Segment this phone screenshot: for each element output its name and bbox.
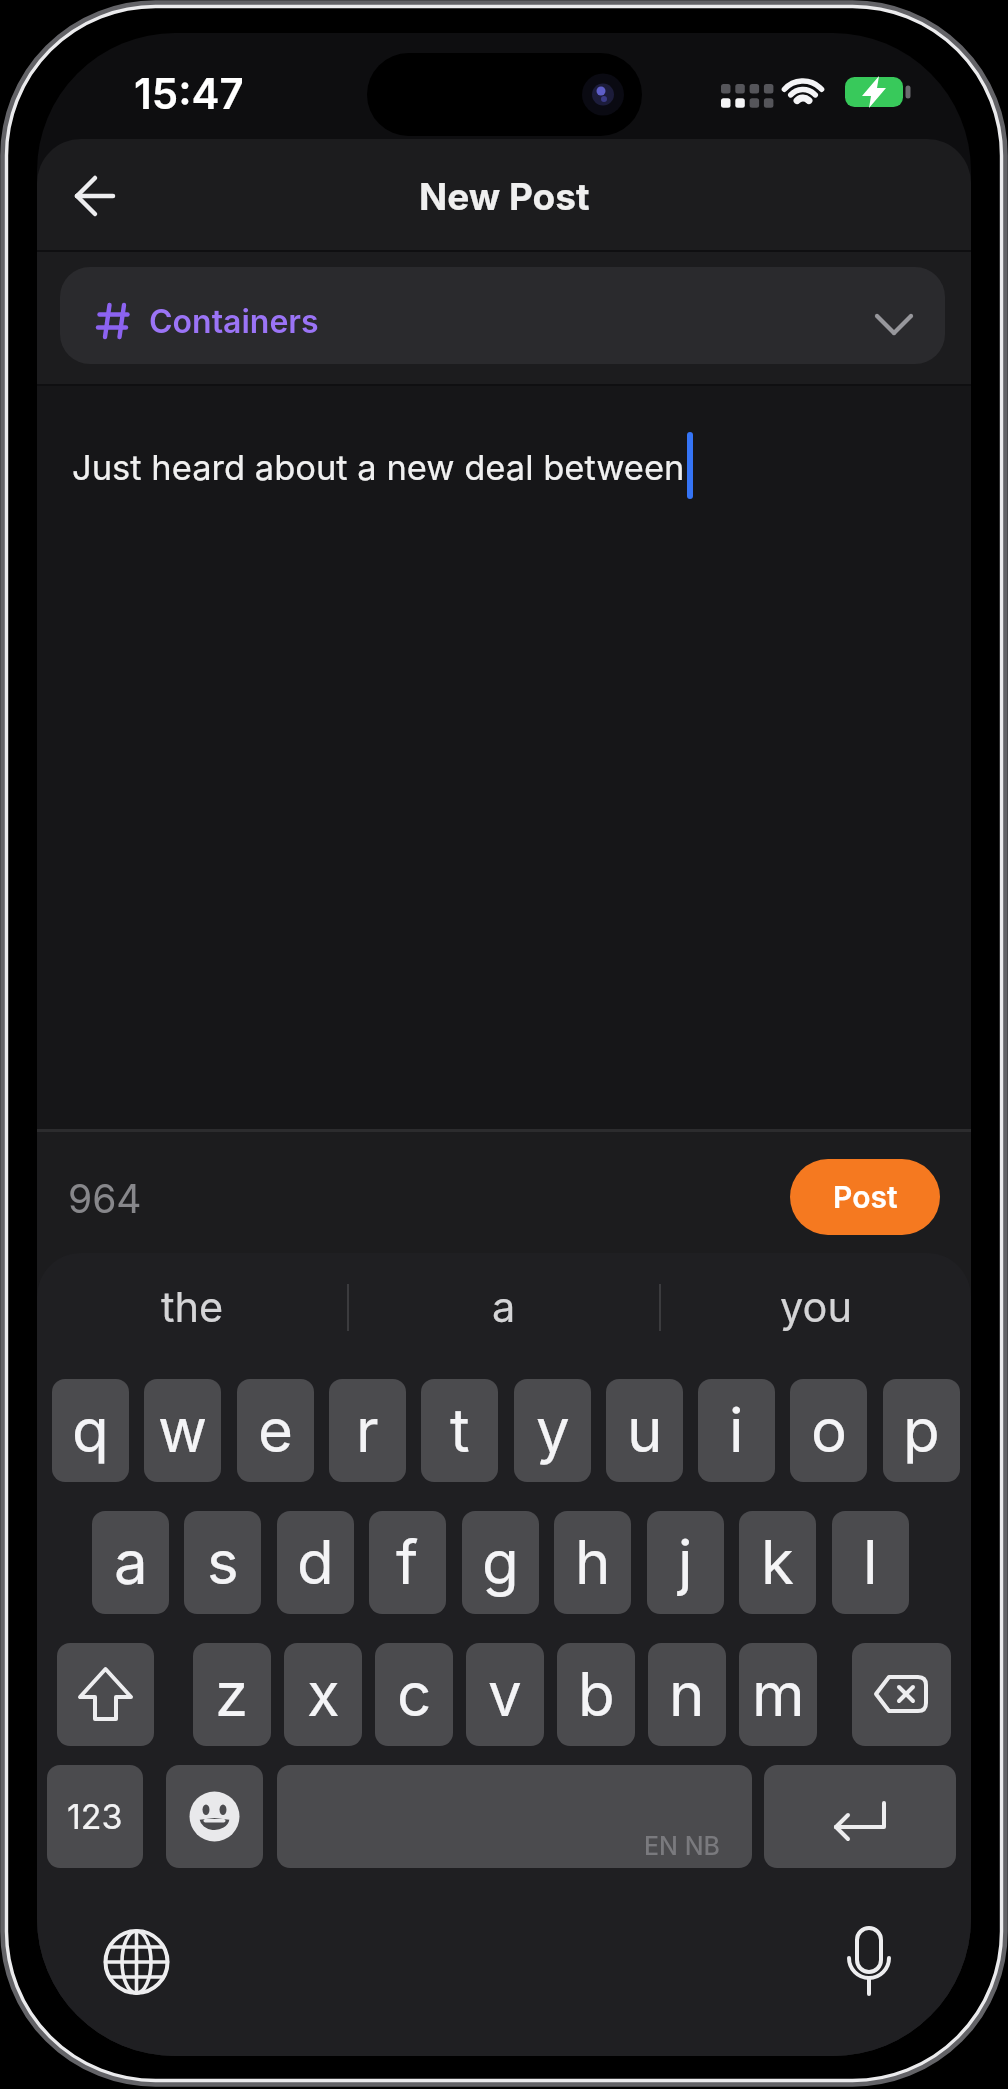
staticText: m [752,1658,805,1731]
staticText: a [492,1282,516,1332]
staticText: t [450,1394,470,1467]
staticText: b [578,1658,615,1731]
button[interactable]: h [554,1511,631,1614]
staticText: x [307,1658,340,1731]
button[interactable]: a [92,1511,169,1614]
button[interactable] [37,1271,348,1343]
staticText: c [397,1658,432,1731]
button[interactable]: p [883,1379,960,1482]
staticText: k [761,1526,794,1599]
staticText: Post [833,1179,898,1215]
staticText: 15:47 [134,68,244,119]
button[interactable]: s [184,1511,261,1614]
staticText: f [396,1526,419,1599]
staticText: s [207,1526,239,1599]
button[interactable]: m [739,1643,817,1746]
button[interactable]: e [237,1379,314,1482]
button[interactable] [790,1159,940,1235]
button[interactable]: f [369,1511,446,1614]
staticText: h [575,1526,611,1599]
staticText: New Post [419,174,590,219]
staticText: r [356,1394,379,1467]
button[interactable]: o [790,1379,867,1482]
staticText: i [729,1394,744,1467]
staticText: j [678,1526,693,1599]
button[interactable]: g [462,1511,539,1614]
staticText: 123 [67,1796,123,1837]
staticText: e [258,1394,293,1467]
button[interactable]: z [193,1643,271,1746]
button[interactable]: u [606,1379,683,1482]
button[interactable] [660,1271,971,1343]
button[interactable] [37,386,971,1129]
button[interactable] [852,1643,951,1746]
staticText: a [114,1526,148,1599]
staticText: v [488,1658,522,1731]
button[interactable]: n [648,1643,726,1746]
button[interactable]: c [375,1643,453,1746]
button[interactable] [166,1765,263,1868]
staticText: 964 [68,1175,142,1222]
button[interactable]: j [647,1511,724,1614]
button[interactable] [67,168,127,228]
button[interactable]: q [52,1379,129,1482]
staticText: Containers [149,302,319,341]
button[interactable]: w [144,1379,221,1482]
staticText: EN NB [644,1831,720,1861]
button[interactable] [47,1765,143,1868]
staticText: p [903,1394,940,1467]
staticText: u [627,1394,663,1467]
staticText: l [863,1526,878,1599]
button[interactable]: y [514,1379,591,1482]
staticText: o [811,1394,847,1467]
button[interactable]: x [284,1643,362,1746]
staticText: g [482,1526,519,1599]
button[interactable] [57,1643,154,1746]
staticText: z [215,1658,249,1731]
button[interactable] [37,1253,971,2056]
button[interactable]: i [698,1379,775,1482]
staticText: q [72,1394,109,1467]
button[interactable] [348,1271,660,1343]
button[interactable]: t [421,1379,498,1482]
button[interactable]: d [277,1511,354,1614]
button[interactable] [60,267,945,364]
button[interactable]: v [466,1643,544,1746]
button[interactable]: k [739,1511,816,1614]
button[interactable] [764,1765,956,1868]
staticText: y [536,1394,570,1467]
button[interactable]: b [557,1643,635,1746]
staticText: Just heard about a new deal between [72,447,685,489]
staticText: you [780,1282,852,1332]
staticText: d [297,1526,334,1599]
button[interactable]: l [832,1511,909,1614]
button[interactable] [277,1765,752,1868]
staticText: the [161,1282,224,1332]
staticText: n [669,1658,705,1731]
button[interactable]: r [329,1379,406,1482]
staticText: w [158,1394,208,1467]
